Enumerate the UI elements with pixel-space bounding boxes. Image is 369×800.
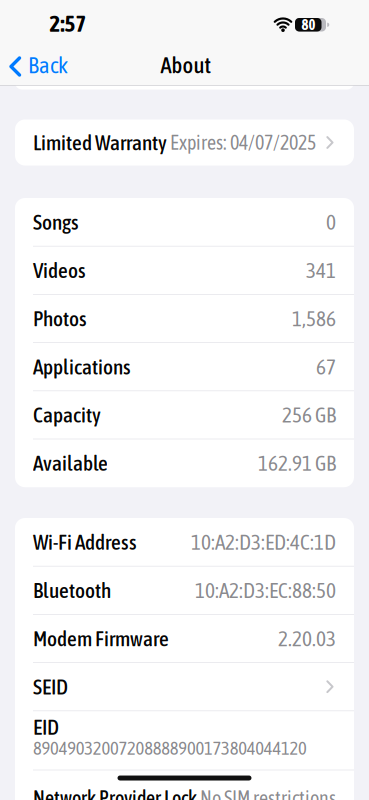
staticText: 162.91 GB <box>258 451 336 475</box>
staticText: 80 <box>301 16 315 33</box>
staticText: Videos <box>33 258 86 282</box>
staticText: Limited Warranty <box>33 130 167 155</box>
staticText: Bluetooth <box>33 578 111 602</box>
button[interactable]: Limited Warranty <box>15 119 354 165</box>
staticText: Photos <box>33 306 87 331</box>
staticText: 67 <box>316 354 336 379</box>
staticText: About <box>160 52 211 78</box>
staticText: Network Provider Lock <box>33 786 197 800</box>
staticText: 10:A2:D3:ED:4C:1D <box>191 530 336 554</box>
button[interactable]: SEID <box>15 663 354 711</box>
staticText: No SIM restrictions <box>200 786 336 800</box>
staticText: 1,586 <box>292 306 336 331</box>
staticText: 2:57 <box>49 10 86 36</box>
staticText: 256 GB <box>282 403 336 427</box>
staticText: Songs <box>33 210 79 234</box>
button[interactable]: Back <box>9 50 79 80</box>
staticText: Modem Firmware <box>33 626 169 651</box>
staticText: Available <box>33 451 108 475</box>
staticText: Wi-Fi Address <box>33 530 137 554</box>
staticText: Capacity <box>33 403 101 427</box>
staticText: EID <box>33 715 59 739</box>
staticText: Expires: 04/07/2025 <box>170 131 316 154</box>
staticText: 0 <box>326 210 336 234</box>
staticText: Applications <box>33 354 131 379</box>
staticText: SEID <box>33 674 68 699</box>
staticText: 2.20.03 <box>278 626 336 651</box>
staticText: 10:A2:D3:EC:88:50 <box>195 578 336 602</box>
staticText: Back <box>28 52 68 78</box>
staticText: 89049032007208888900173804044120 <box>33 737 307 759</box>
staticText: 341 <box>306 258 336 282</box>
